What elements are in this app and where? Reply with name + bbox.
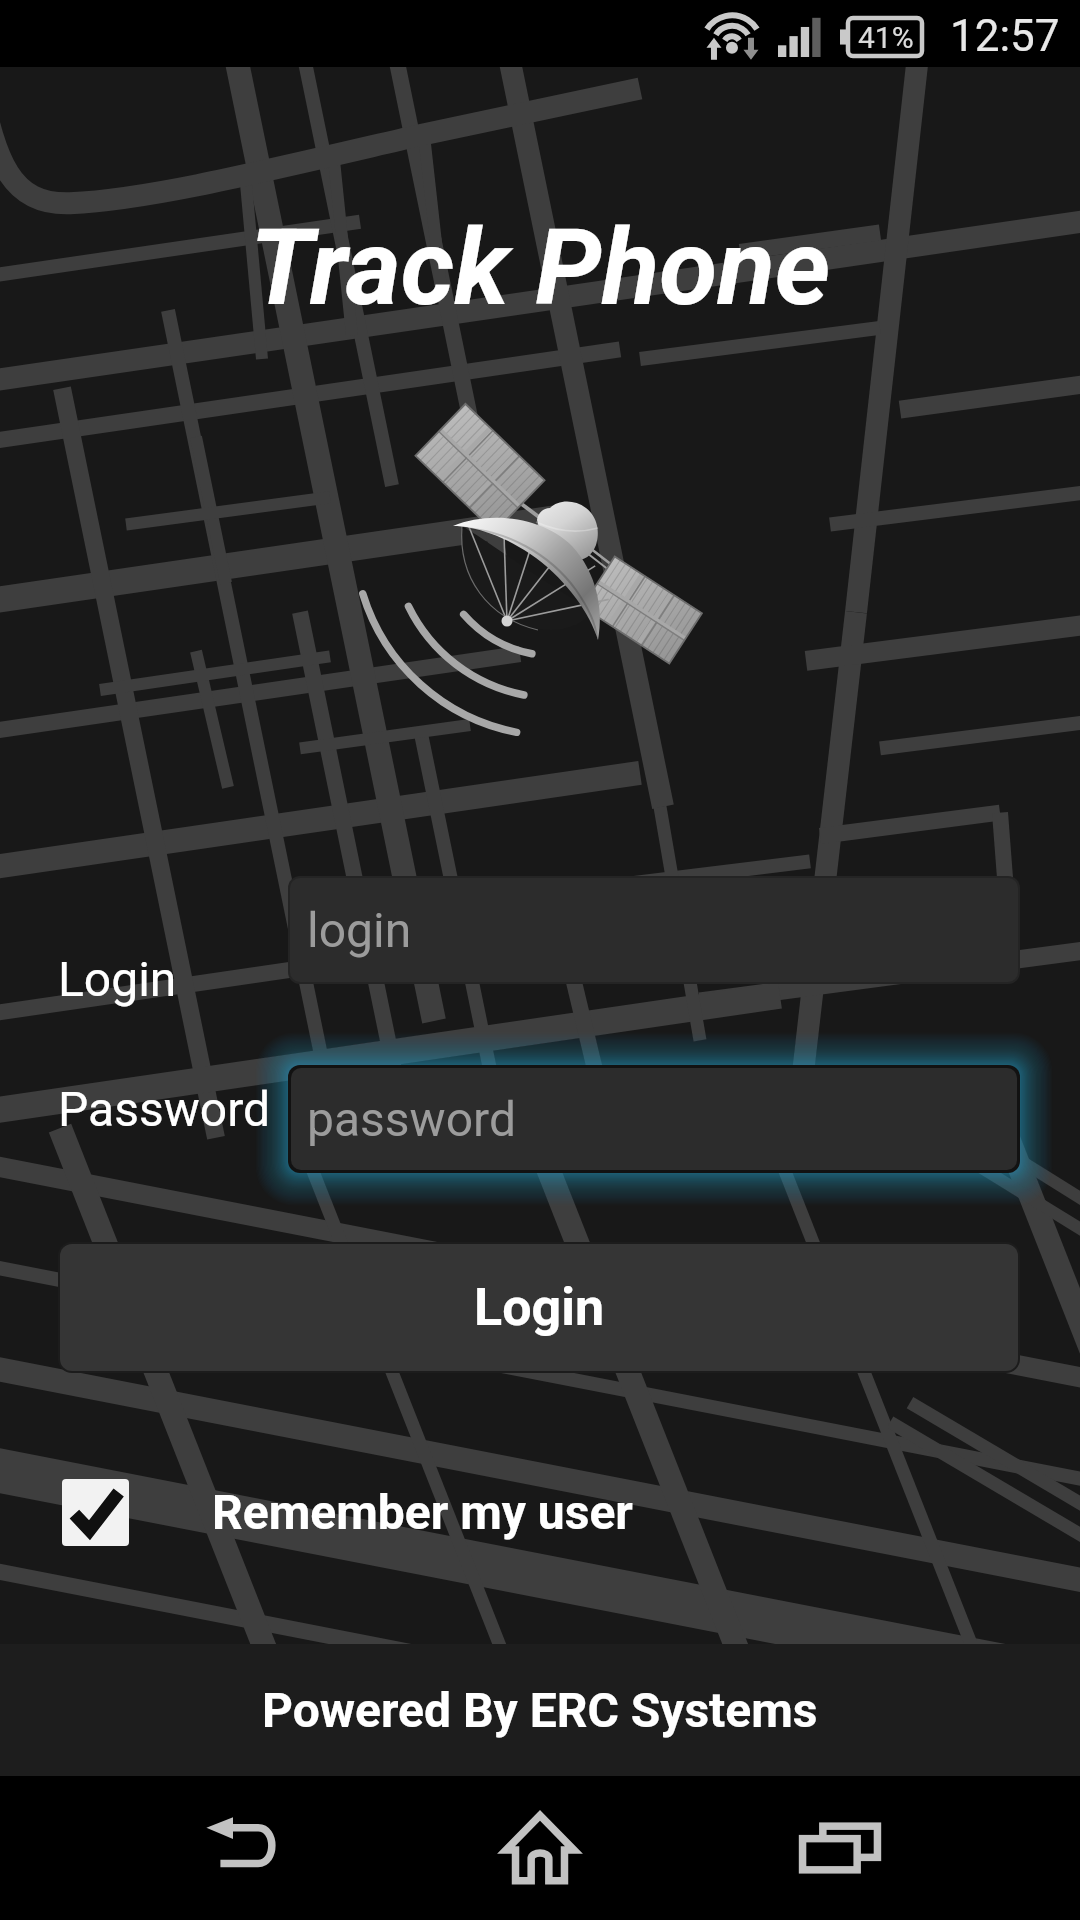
staticText: password [307,1091,516,1147]
button[interactable]: Back [168,1776,312,1920]
button[interactable]: Home [468,1776,612,1920]
button[interactable]: password [288,1065,1020,1173]
staticText: Powered By ERC Systems [262,1682,818,1738]
staticText: login [307,902,412,958]
button[interactable]: login [288,876,1020,984]
staticText: 41% [858,20,914,55]
staticText: Login [58,951,177,1007]
staticText: Password [58,1081,271,1137]
staticText: Login [474,1277,605,1338]
staticText: 12:57 [950,10,1060,62]
button[interactable]: Remember my user [62,1472,762,1552]
staticText: Track Phone [0,206,1080,330]
button[interactable]: Login [58,1242,1020,1373]
button[interactable]: Recents [768,1776,912,1920]
staticText: Remember my user [212,1484,633,1540]
